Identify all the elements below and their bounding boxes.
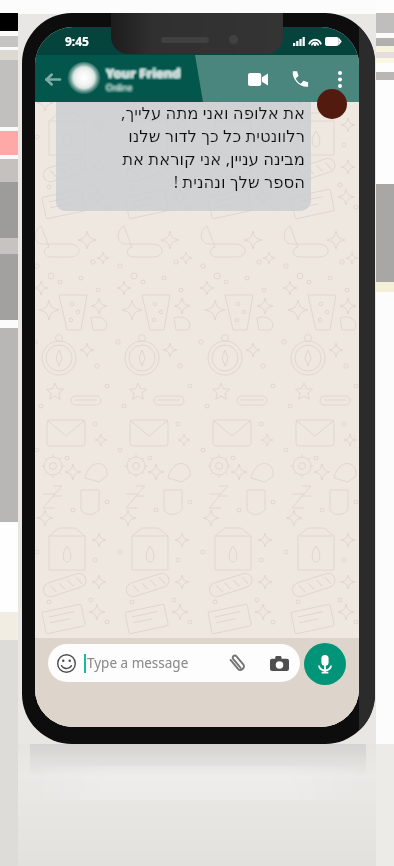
button[interactable]: More options bbox=[327, 66, 353, 92]
staticText: Online bbox=[108, 84, 135, 96]
staticText: Online bbox=[105, 81, 132, 93]
staticText: Online bbox=[107, 82, 134, 94]
button[interactable]: Camera bbox=[268, 652, 290, 674]
staticText: Your Friend bbox=[105, 66, 180, 84]
staticText: Your Friend bbox=[107, 64, 182, 82]
staticText: Online bbox=[108, 81, 135, 93]
staticText: Online bbox=[108, 83, 135, 95]
staticText: Your Friend bbox=[104, 62, 179, 80]
staticText: Online bbox=[107, 84, 134, 96]
staticText: Your Friend bbox=[108, 65, 183, 83]
staticText: Online bbox=[104, 82, 131, 94]
staticText: Your Friend bbox=[108, 66, 183, 84]
staticText: Your Friend bbox=[108, 64, 183, 82]
staticText: Your Friend bbox=[104, 65, 179, 83]
staticText: Online bbox=[107, 80, 134, 92]
staticText: Your Friend bbox=[106, 66, 181, 84]
button[interactable]: Type a message bbox=[48, 644, 300, 682]
staticText: Your Friend bbox=[107, 66, 182, 84]
staticText: Online bbox=[104, 80, 131, 92]
staticText: את אלופה ואני מתה עלייך, רלוונטית כל כך … bbox=[56, 101, 305, 193]
staticText: Your Friend bbox=[108, 62, 183, 80]
button[interactable]: Video call bbox=[243, 64, 273, 94]
staticText: Your Friend bbox=[105, 65, 180, 83]
staticText: Online bbox=[106, 83, 133, 95]
staticText: Online bbox=[106, 82, 133, 94]
staticText: Online bbox=[104, 81, 131, 93]
staticText: Your Friend bbox=[106, 62, 181, 80]
staticText: Your Friend bbox=[104, 64, 179, 82]
staticText: Your Friend bbox=[105, 64, 180, 82]
staticText: Your Friend bbox=[107, 62, 182, 80]
staticText: Online bbox=[105, 80, 132, 92]
staticText: Your Friend bbox=[104, 66, 179, 84]
staticText: Online bbox=[107, 81, 134, 93]
staticText: Your Friend bbox=[108, 63, 183, 81]
staticText: Your Friend bbox=[105, 62, 180, 80]
staticText: Your Friend bbox=[107, 63, 182, 81]
staticText: Online bbox=[108, 82, 135, 94]
staticText: 9:45 bbox=[65, 33, 89, 49]
staticText: Online bbox=[104, 83, 131, 95]
staticText: Your Friend bbox=[106, 63, 181, 81]
staticText: Your Friend bbox=[106, 64, 181, 82]
button[interactable]: Record voice message bbox=[304, 643, 346, 685]
button[interactable]: Back bbox=[39, 66, 65, 92]
staticText: Your Friend bbox=[106, 65, 181, 83]
staticText: Online bbox=[106, 81, 133, 93]
button[interactable]: Voice call bbox=[287, 66, 313, 92]
staticText: Online bbox=[107, 83, 134, 95]
staticText: Online bbox=[105, 82, 132, 94]
staticText: Online bbox=[106, 84, 133, 96]
staticText: Online bbox=[105, 83, 132, 95]
staticText: Your Friend bbox=[107, 65, 182, 83]
staticText: Online bbox=[105, 84, 132, 96]
staticText: Online bbox=[106, 80, 133, 92]
staticText: Online bbox=[104, 84, 131, 96]
staticText: Online bbox=[108, 80, 135, 92]
button[interactable]: Attach bbox=[226, 652, 248, 674]
staticText: Your Friend bbox=[104, 63, 179, 81]
staticText: Your Friend bbox=[105, 63, 180, 81]
staticText: Type a message bbox=[87, 654, 189, 672]
